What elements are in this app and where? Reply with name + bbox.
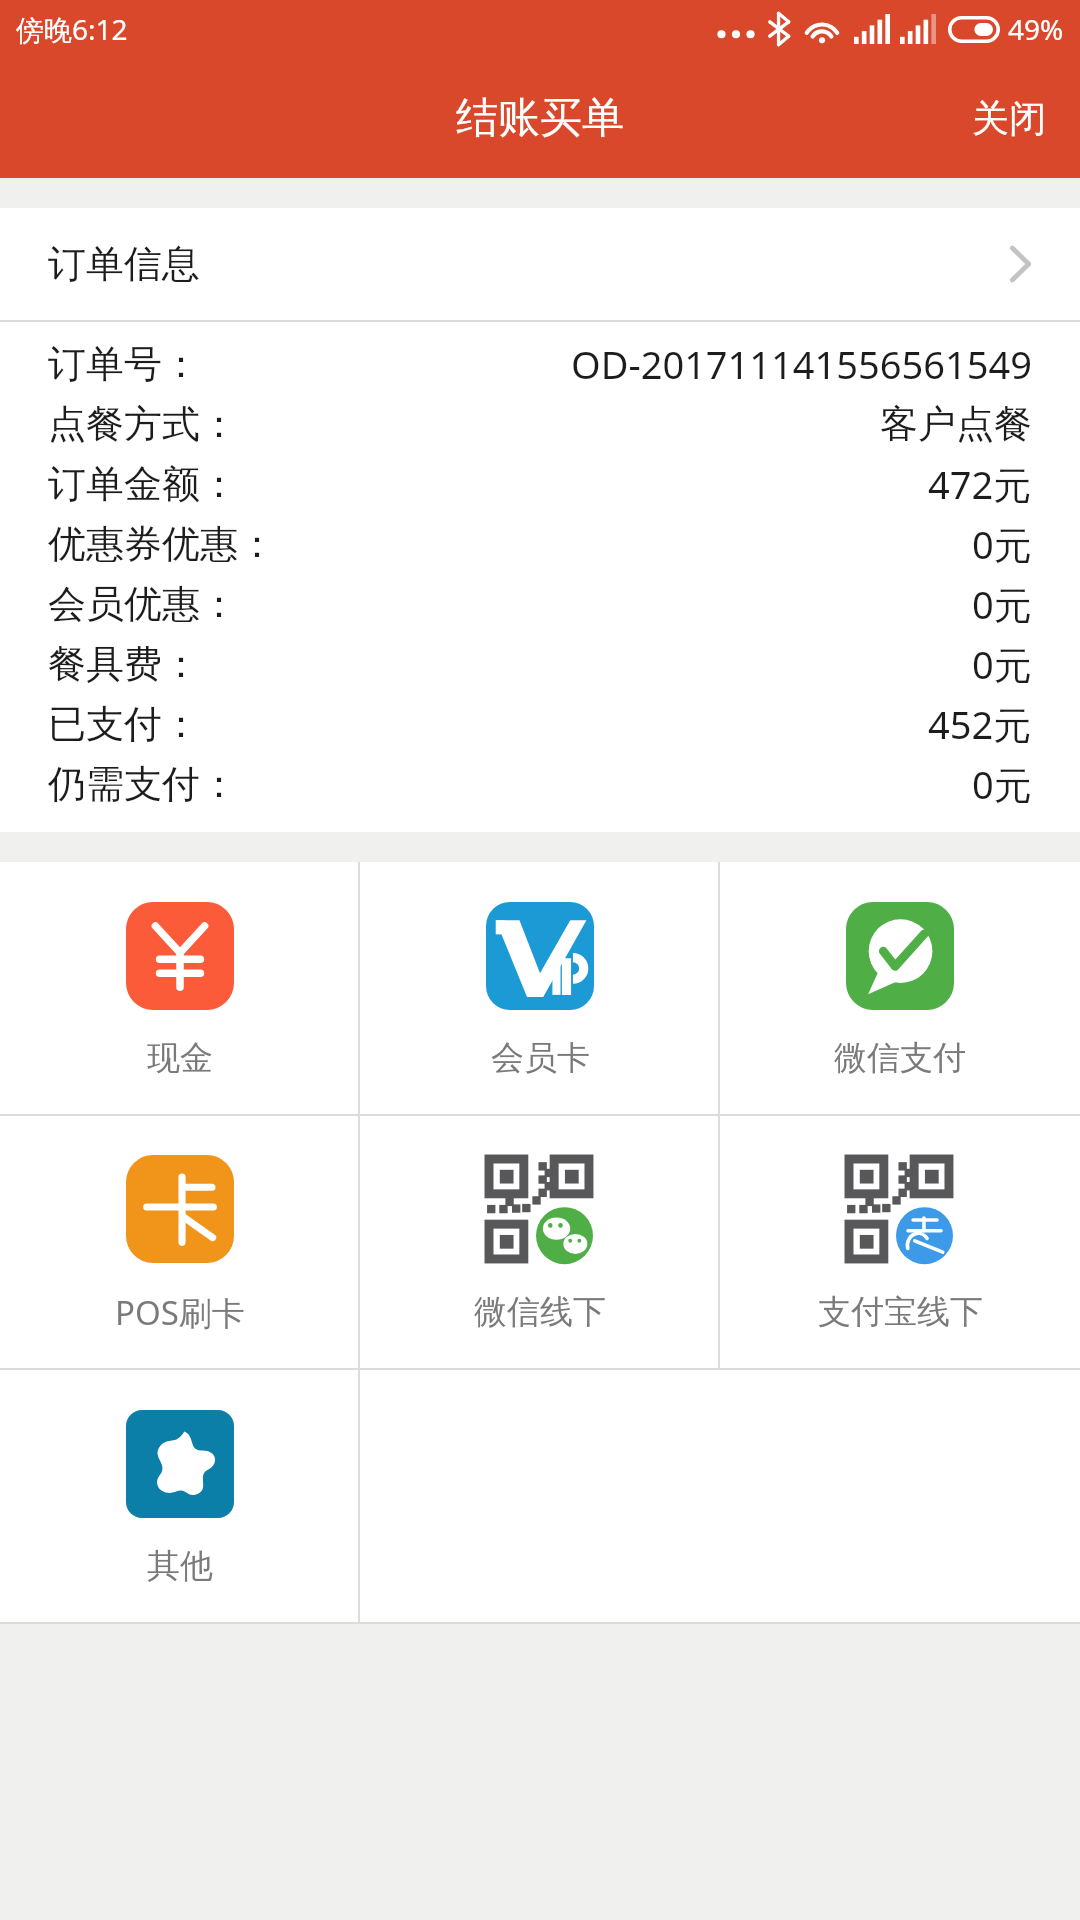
- staticText: 订单号：: [48, 340, 200, 388]
- staticText: 其他: [147, 1545, 213, 1587]
- staticText: 会员优惠：: [48, 580, 238, 628]
- staticText: OD-201711141556561549: [571, 338, 1032, 390]
- staticText: 仍需支付：: [48, 760, 238, 808]
- staticText: 0元: [972, 518, 1032, 570]
- staticText: 微信线下: [474, 1291, 606, 1333]
- staticText: 傍晚6:12: [16, 10, 128, 48]
- staticText: 客户点餐: [880, 400, 1032, 448]
- staticText: 472元: [928, 458, 1032, 510]
- staticText: 关闭: [972, 95, 1046, 142]
- staticText: 订单金额：: [48, 460, 238, 508]
- button[interactable]: 订单信息: [0, 208, 1080, 320]
- staticText: 0元: [972, 638, 1032, 690]
- button[interactable]: 微信支付: [720, 862, 1080, 1114]
- staticText: 现金: [147, 1037, 213, 1079]
- staticText: 结账买单: [456, 92, 624, 145]
- staticText: 订单信息: [48, 240, 200, 288]
- staticText: 0元: [972, 578, 1032, 630]
- staticText: 支付宝线下: [818, 1291, 983, 1333]
- staticText: 餐具费：: [48, 640, 200, 688]
- staticText: 49%: [1008, 10, 1064, 48]
- button[interactable]: 微信线下: [360, 1116, 720, 1368]
- button[interactable]: 关闭: [938, 58, 1080, 178]
- staticText: 会员卡: [491, 1037, 590, 1079]
- button[interactable]: 支付宝线下: [720, 1116, 1080, 1368]
- button[interactable]: 现金: [0, 862, 360, 1114]
- staticText: 已支付：: [48, 700, 200, 748]
- button[interactable]: 会员卡: [360, 862, 720, 1114]
- staticText: 452元: [928, 698, 1032, 750]
- button[interactable]: POS刷卡: [0, 1116, 360, 1368]
- other: View order details: [1008, 243, 1032, 285]
- staticText: 点餐方式：: [48, 400, 238, 448]
- staticText: POS刷卡: [115, 1290, 245, 1335]
- button[interactable]: 其他: [0, 1370, 360, 1622]
- staticText: 优惠券优惠：: [48, 520, 276, 568]
- staticText: 微信支付: [834, 1037, 966, 1079]
- staticText: 0元: [972, 758, 1032, 810]
